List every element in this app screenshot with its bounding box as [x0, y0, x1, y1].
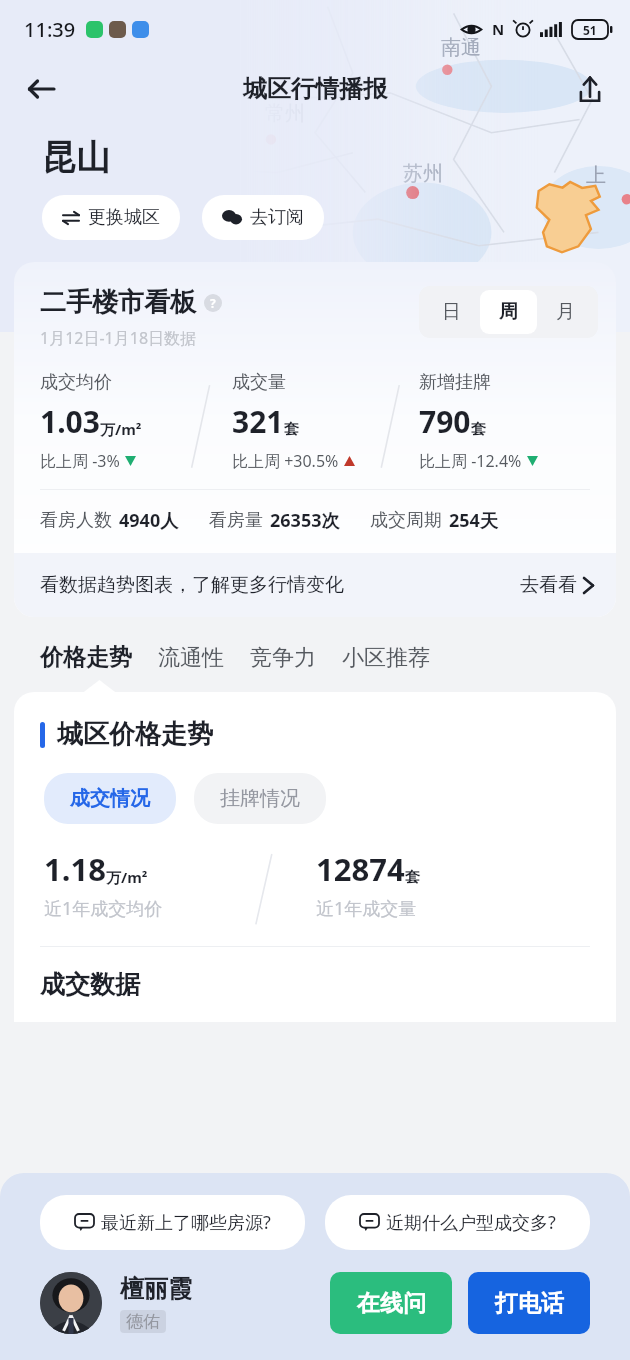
staticText: 万/m²	[106, 867, 148, 887]
staticText: 价格走势	[40, 643, 132, 672]
button[interactable]: 看数据趋势图表，了解更多行情变化	[14, 553, 616, 617]
staticText: 挂牌情况	[220, 786, 300, 811]
staticText: 打电话	[495, 1289, 564, 1318]
staticText: 二手楼市看板	[40, 286, 196, 319]
staticText: 比上周 -12.4%	[419, 450, 522, 472]
staticText: 254天	[449, 508, 498, 533]
staticText: N	[492, 19, 505, 39]
staticText: 成交量	[232, 371, 286, 394]
staticText: 周	[499, 300, 518, 324]
staticText: 看房人数	[40, 509, 112, 532]
staticText: 檀丽霞	[120, 1274, 192, 1304]
staticText: 26353次	[270, 508, 340, 533]
button[interactable]: 分享	[564, 63, 616, 115]
button[interactable]: 最近新上了哪些房源?	[40, 1195, 305, 1250]
staticText: 790	[419, 401, 471, 442]
staticText: 南通	[441, 35, 481, 60]
staticText: 比上周 -3%	[40, 450, 120, 472]
staticText: 12874	[316, 848, 405, 890]
button[interactable]: 小区推荐	[340, 636, 432, 680]
staticText: 比上周 +30.5%	[232, 450, 339, 472]
button[interactable]: 月	[537, 290, 594, 334]
staticText: ?	[210, 295, 216, 311]
staticText: 1.18	[44, 848, 106, 890]
staticText: 套	[284, 420, 299, 439]
staticText: 城区价格走势	[57, 718, 213, 751]
staticText: 近1年成交量	[316, 896, 417, 921]
staticText: 成交情况	[70, 786, 150, 811]
button[interactable]: 在线问	[330, 1272, 452, 1334]
staticText: 在线问	[357, 1289, 426, 1318]
staticText: 去看看	[520, 573, 577, 597]
staticText: 成交均价	[40, 371, 112, 394]
button[interactable]: 打电话	[468, 1272, 590, 1334]
button[interactable]: 近期什么户型成交多?	[325, 1195, 590, 1250]
button[interactable]: 流通性	[156, 636, 226, 680]
staticText: 更换城区	[88, 206, 160, 229]
staticText: 4940人	[119, 508, 179, 533]
button[interactable]: 说明	[204, 294, 222, 312]
button[interactable]: 竞争力	[248, 636, 318, 680]
staticText: 去订阅	[250, 206, 304, 229]
button[interactable]: 价格走势	[38, 635, 134, 680]
button[interactable]: 周	[480, 290, 537, 334]
staticText: 1.03	[40, 401, 100, 442]
staticText: 最近新上了哪些房源?	[101, 1210, 271, 1235]
staticText: 新增挂牌	[419, 371, 491, 394]
button[interactable]: 日	[423, 290, 480, 334]
staticText: 城区行情播报	[243, 74, 387, 104]
staticText: 流通性	[158, 644, 224, 672]
staticText: 苏州	[403, 161, 443, 186]
staticText: 昆山	[42, 136, 110, 179]
button[interactable]: 成交情况	[44, 773, 176, 824]
staticText: 近期什么户型成交多?	[386, 1210, 556, 1235]
staticText: 看数据趋势图表，了解更多行情变化	[40, 573, 344, 597]
staticText: 日	[442, 300, 461, 324]
staticText: 壹兴	[428, 287, 468, 312]
staticText: 成交数据	[40, 969, 140, 1000]
staticText: 成交周期	[370, 509, 442, 532]
staticText: 小区推荐	[342, 644, 430, 672]
button[interactable]: 挂牌情况	[194, 773, 326, 824]
staticText: 321	[232, 401, 284, 442]
button[interactable]	[40, 1272, 102, 1334]
staticText: 套	[405, 868, 420, 887]
staticText: 看房量	[209, 509, 263, 532]
staticText: 51	[583, 22, 597, 38]
button[interactable]: 去订阅	[202, 195, 324, 240]
staticText: 德佑	[126, 1311, 160, 1332]
staticText: 竞争力	[250, 644, 316, 672]
staticText: 上	[586, 163, 606, 188]
staticText: 1月12日-1月18日数据	[40, 327, 197, 349]
staticText: 11:39	[24, 16, 76, 43]
staticText: 近1年成交均价	[44, 896, 163, 921]
staticText: 万/m²	[100, 419, 142, 439]
button[interactable]: 更换城区	[42, 195, 180, 240]
staticText: 月	[556, 300, 575, 324]
button[interactable]: 返回	[14, 62, 68, 116]
staticText: 套	[471, 420, 486, 439]
